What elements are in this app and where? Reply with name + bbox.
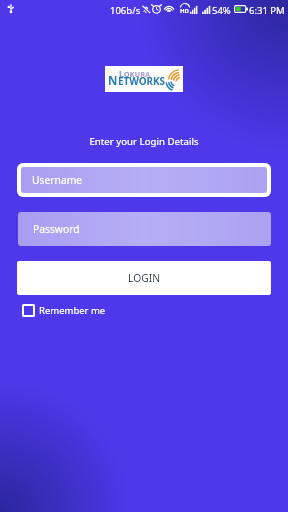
other: USB connected	[8, 4, 14, 13]
button[interactable]: Username	[21, 167, 267, 193]
staticText: Remember me	[39, 304, 106, 317]
staticText: 106b/s	[110, 4, 141, 17]
staticText: HD	[180, 7, 189, 15]
staticText: L	[119, 68, 124, 80]
button[interactable]: Remember me	[22, 302, 106, 319]
staticText: LOGIN	[128, 271, 161, 285]
button[interactable]: LOGIN	[17, 261, 271, 295]
staticText: 54%	[212, 4, 231, 17]
staticText: 6:31 PM	[249, 4, 285, 17]
staticText: N	[108, 73, 118, 89]
button[interactable]: Password	[18, 212, 271, 246]
staticText: Password	[33, 222, 80, 236]
staticText: Username	[32, 173, 83, 187]
staticText: ETWORKS	[118, 74, 165, 88]
staticText: Enter your Login Details	[0, 135, 288, 148]
staticText: OKURA	[124, 70, 151, 80]
